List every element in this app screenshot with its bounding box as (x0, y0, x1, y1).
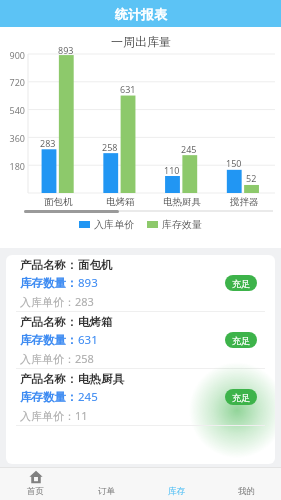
staticText: 面包机 (78, 258, 113, 272)
staticText: 库存数量： (20, 333, 78, 347)
staticText: 库存效量 (162, 218, 202, 231)
staticText: 库存数量： (20, 276, 78, 290)
button[interactable]: 库存 (141, 467, 211, 500)
staticText: 150 (226, 157, 242, 169)
staticText: 电烤箱 (106, 196, 135, 208)
button[interactable]: 我的 (211, 467, 281, 500)
staticText: 245 (78, 389, 98, 405)
staticText: 283 (75, 294, 94, 309)
staticText: 11 (75, 408, 88, 423)
staticText: 产品名称： (20, 258, 78, 272)
staticText: 搅拌器 (230, 196, 259, 208)
staticText: 库存 (168, 486, 185, 497)
staticText: 入库单价： (20, 295, 75, 309)
staticText: 入库单价： (20, 409, 75, 423)
staticText: 入库单价： (20, 352, 75, 366)
button[interactable]: 充足 (225, 275, 257, 291)
staticText: 258 (75, 351, 94, 366)
staticText: 产品名称： (20, 315, 78, 329)
staticText: 一周出库量 (111, 34, 171, 49)
staticText: 110 (164, 164, 180, 176)
staticText: 258 (102, 141, 118, 153)
staticText: 900 (9, 49, 25, 61)
staticText: 面包机 (44, 196, 73, 208)
staticText: 充足 (232, 278, 250, 289)
staticText: 180 (9, 160, 25, 172)
staticText: 充足 (232, 335, 250, 346)
staticText: 产品名称： (20, 372, 78, 386)
button[interactable]: 产品名称： (6, 312, 275, 368)
staticText: 首页 (27, 486, 44, 497)
staticText: 电热厨具 (163, 196, 201, 208)
button[interactable]: 产品名称： (6, 255, 275, 311)
staticText: 893 (78, 275, 98, 291)
staticText: 电热厨具 (78, 372, 124, 386)
staticText: 283 (40, 137, 56, 149)
button[interactable]: 首页 (0, 467, 71, 500)
button[interactable]: 订单 (71, 467, 141, 500)
staticText: 订单 (98, 486, 115, 497)
staticText: 540 (9, 104, 25, 116)
staticText: 52 (246, 172, 257, 184)
staticText: 631 (120, 83, 136, 95)
staticText: 720 (9, 76, 25, 88)
staticText: 充足 (232, 392, 250, 403)
button[interactable]: 产品名称： (6, 369, 275, 425)
staticText: 893 (58, 44, 74, 56)
staticText: 631 (78, 332, 98, 348)
staticText: 统计报表 (115, 6, 167, 22)
staticText: 电烤箱 (78, 315, 113, 329)
staticText: 245 (181, 143, 197, 155)
staticText: 入库单价 (94, 218, 134, 231)
staticText: 库存数量： (20, 390, 78, 404)
staticText: 我的 (238, 486, 255, 497)
staticText: 360 (9, 132, 25, 144)
button[interactable]: 充足 (225, 332, 257, 348)
button[interactable]: 充足 (225, 389, 257, 405)
